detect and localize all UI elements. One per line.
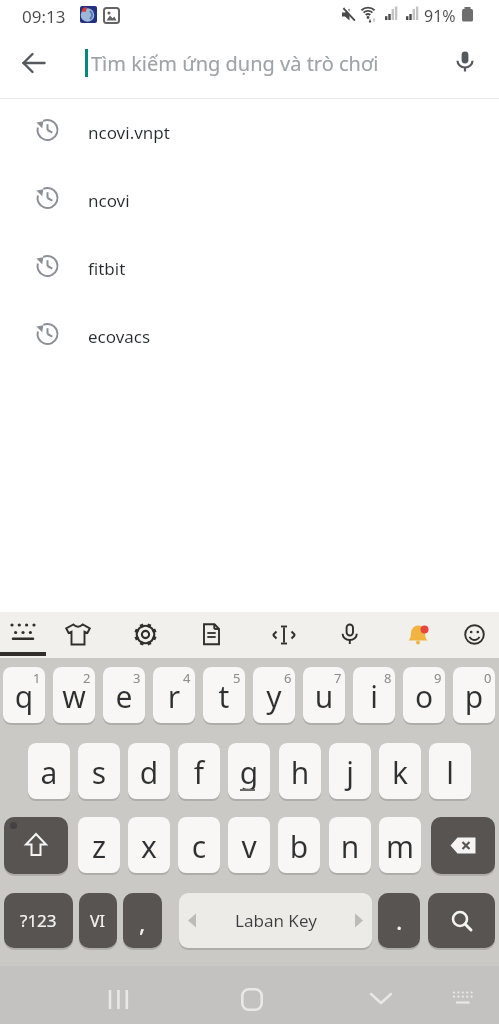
button[interactable] — [399, 612, 439, 658]
staticText: r — [153, 676, 195, 717]
staticText: x — [128, 826, 170, 867]
button[interactable] — [329, 817, 371, 875]
staticText: 2 — [83, 669, 91, 687]
button[interactable] — [78, 817, 120, 875]
staticText: 4 — [183, 669, 191, 687]
button[interactable] — [3, 667, 45, 725]
button[interactable] — [178, 743, 220, 801]
button[interactable] — [453, 667, 495, 725]
staticText: 1 — [33, 669, 41, 687]
button[interactable]: , — [123, 893, 162, 950]
staticText: q — [3, 676, 45, 717]
staticText: n — [329, 826, 371, 867]
staticText: 09:13 — [22, 5, 66, 28]
button[interactable] — [353, 667, 395, 725]
button[interactable] — [379, 743, 421, 801]
staticText: 8 — [384, 669, 392, 687]
staticText: b — [278, 826, 320, 867]
staticText: a — [28, 752, 70, 793]
button[interactable] — [444, 974, 482, 1016]
button[interactable] — [278, 817, 320, 875]
staticText: w — [53, 676, 95, 717]
staticText: e — [103, 676, 145, 717]
staticText: v — [228, 826, 270, 867]
button[interactable] — [431, 817, 495, 876]
staticText: k — [379, 752, 421, 793]
staticText: VI — [90, 910, 106, 932]
button[interactable] — [264, 612, 304, 658]
button[interactable] — [28, 743, 70, 801]
button[interactable]: ncovi.vnpt — [0, 99, 499, 167]
staticText: . — [396, 904, 403, 937]
staticText: 7 — [334, 669, 342, 687]
button[interactable] — [228, 972, 276, 1018]
staticText: ncovi.vnpt — [88, 121, 170, 144]
button[interactable] — [203, 667, 245, 725]
button[interactable] — [103, 667, 145, 725]
staticText: 5 — [233, 669, 241, 687]
button[interactable] — [453, 50, 477, 74]
button[interactable] — [429, 743, 471, 801]
staticText: ?123 — [20, 909, 57, 932]
button[interactable] — [96, 972, 144, 1018]
button[interactable] — [428, 893, 495, 950]
staticText: u — [303, 676, 345, 717]
staticText: g — [228, 752, 270, 793]
button[interactable] — [228, 743, 270, 801]
staticText: t — [203, 676, 245, 717]
button[interactable]: ecovacs — [0, 303, 499, 371]
staticText: 6 — [284, 669, 292, 687]
button[interactable]: ncovi — [0, 167, 499, 235]
staticText: j — [329, 752, 371, 793]
staticText: Laban Key — [235, 909, 317, 932]
button[interactable] — [357, 972, 405, 1018]
staticText: , — [139, 906, 146, 939]
staticText: z — [78, 826, 120, 867]
staticText: s — [78, 752, 120, 793]
button[interactable]: fitbit — [0, 235, 499, 303]
staticText: i — [353, 676, 395, 717]
button[interactable] — [178, 817, 220, 875]
button[interactable] — [403, 667, 445, 725]
button[interactable] — [125, 612, 165, 658]
button[interactable]: Tìm kiếm ứng dụng và trò chơi — [0, 30, 499, 98]
button[interactable]: ?123 — [4, 893, 73, 950]
button[interactable] — [379, 817, 421, 875]
staticText: c — [178, 826, 220, 867]
button[interactable] — [128, 817, 170, 875]
button[interactable] — [455, 612, 495, 658]
button[interactable] — [4, 612, 44, 658]
staticText: Tìm kiếm ứng dụng và trò chơi — [91, 50, 379, 77]
staticText: 91% — [424, 5, 456, 27]
button[interactable] — [303, 667, 345, 725]
button[interactable]: VI — [79, 893, 117, 950]
staticText: f — [178, 752, 220, 793]
button[interactable]: . — [378, 893, 420, 950]
staticText: ncovi — [88, 189, 130, 212]
staticText: 0 — [484, 669, 492, 687]
button[interactable] — [329, 743, 371, 801]
button[interactable] — [253, 667, 295, 725]
staticText: y — [253, 676, 295, 717]
button[interactable] — [153, 667, 195, 725]
button[interactable] — [128, 743, 170, 801]
button[interactable] — [4, 817, 68, 876]
button[interactable] — [58, 612, 98, 658]
staticText: fitbit — [88, 257, 126, 280]
button[interactable] — [192, 612, 232, 658]
staticText: d — [128, 752, 170, 793]
button[interactable] — [279, 743, 321, 801]
button[interactable] — [228, 817, 270, 875]
staticText: o — [403, 676, 445, 717]
button[interactable]: Laban Key — [179, 893, 372, 950]
button[interactable] — [78, 743, 120, 801]
staticText: p — [453, 676, 495, 717]
staticText: ecovacs — [88, 325, 151, 348]
staticText: l — [429, 752, 471, 793]
staticText: 9 — [434, 669, 442, 687]
staticText: 3 — [133, 669, 141, 687]
staticText: m — [379, 826, 421, 867]
button[interactable] — [330, 612, 370, 658]
button[interactable] — [53, 667, 95, 725]
staticText: h — [279, 752, 321, 793]
